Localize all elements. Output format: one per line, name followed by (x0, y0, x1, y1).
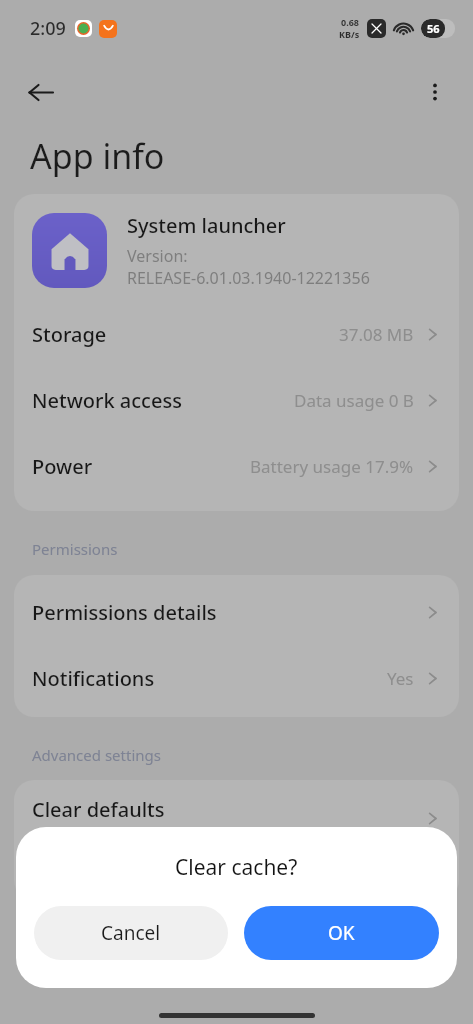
staticText: Clear defaults (32, 796, 165, 823)
staticText: 37.08 MB (339, 323, 414, 346)
button[interactable]: Network access (14, 367, 459, 433)
staticText: Clear cache? (175, 853, 298, 882)
staticText: App info (30, 133, 165, 179)
staticText: Network access (32, 387, 182, 414)
staticText: 0.68 (341, 16, 359, 28)
staticText: Notifications (32, 665, 155, 692)
button[interactable]: Permissions details (14, 579, 459, 645)
staticText: Version: (127, 245, 188, 267)
staticText: System launcher (127, 212, 286, 239)
staticText: Cancel (101, 920, 161, 946)
staticText: 2:09 (30, 16, 66, 41)
staticText: Data usage 0 B (294, 389, 414, 412)
button[interactable]: Clear defaults (32, 796, 441, 851)
staticText: Storage (32, 321, 107, 348)
staticText: Permissions (32, 539, 118, 559)
button[interactable]: Storage (14, 301, 459, 367)
staticText: Permissions details (32, 599, 217, 626)
staticText: OK (328, 920, 355, 946)
staticText: Battery usage 17.9% (250, 455, 414, 478)
staticText: Yes (387, 667, 414, 690)
staticText: Power (32, 453, 93, 480)
button[interactable]: Back (16, 68, 64, 116)
button[interactable]: OK (244, 906, 439, 960)
staticText: Advanced settings (32, 745, 161, 765)
button[interactable]: Cancel (34, 906, 228, 960)
staticText: RELEASE-6.01.03.1940-12221356 (127, 267, 370, 289)
staticText: 56 (427, 21, 440, 36)
button[interactable]: Notifications (14, 645, 459, 711)
staticText: KB/s (339, 28, 360, 40)
button[interactable]: Power (14, 433, 459, 499)
button[interactable]: More options (411, 68, 459, 116)
